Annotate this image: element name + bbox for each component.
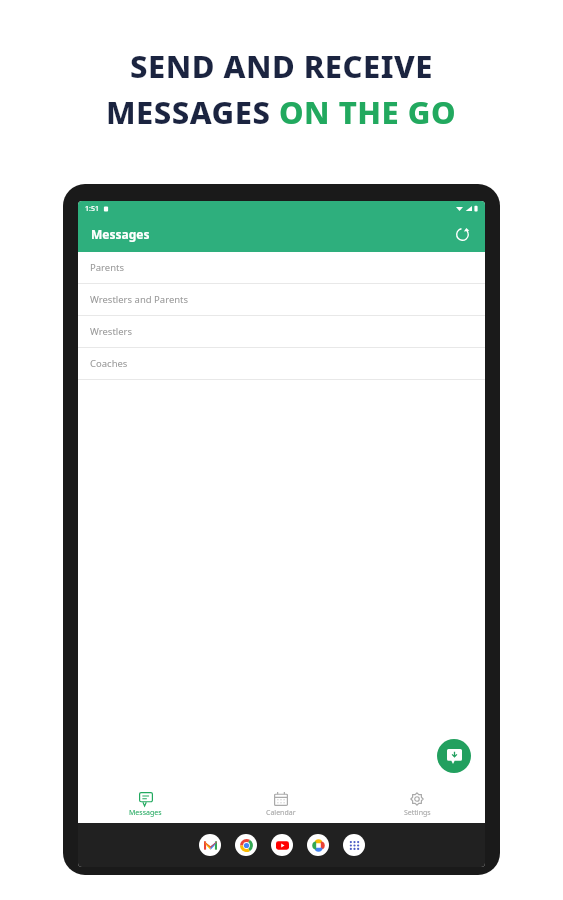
staticText: MESSAGES	[106, 91, 279, 133]
button[interactable]: Refresh	[449, 221, 475, 247]
button[interactable]: YouTube	[271, 834, 293, 856]
button[interactable]: Parents	[78, 252, 485, 284]
button[interactable]: Wrestlers	[78, 316, 485, 348]
button[interactable]: Settings	[349, 787, 485, 823]
button[interactable]: Calendar	[213, 787, 349, 823]
staticText: Messages	[91, 226, 150, 242]
staticText: ON THE GO	[279, 91, 457, 133]
staticText: Parents	[90, 261, 125, 274]
staticText: Wrestlers	[90, 325, 133, 338]
button[interactable]: All apps	[343, 834, 365, 856]
staticText: Messages	[129, 808, 162, 818]
staticText: 1:51	[85, 204, 99, 214]
staticText: Wrestlers and Parents	[90, 293, 189, 306]
staticText: SEND AND RECEIVE	[130, 45, 433, 87]
button[interactable]: Chrome	[235, 834, 257, 856]
staticText: Settings	[404, 808, 431, 818]
button[interactable]: Messages	[78, 787, 213, 823]
button[interactable]: Gmail	[199, 834, 221, 856]
staticText: Coaches	[90, 357, 128, 370]
button[interactable]: Wrestlers and Parents	[78, 284, 485, 316]
button[interactable]: Coaches	[78, 348, 485, 380]
staticText: Calendar	[266, 808, 296, 818]
button[interactable]: Photos	[307, 834, 329, 856]
button[interactable]: New message	[437, 739, 471, 773]
